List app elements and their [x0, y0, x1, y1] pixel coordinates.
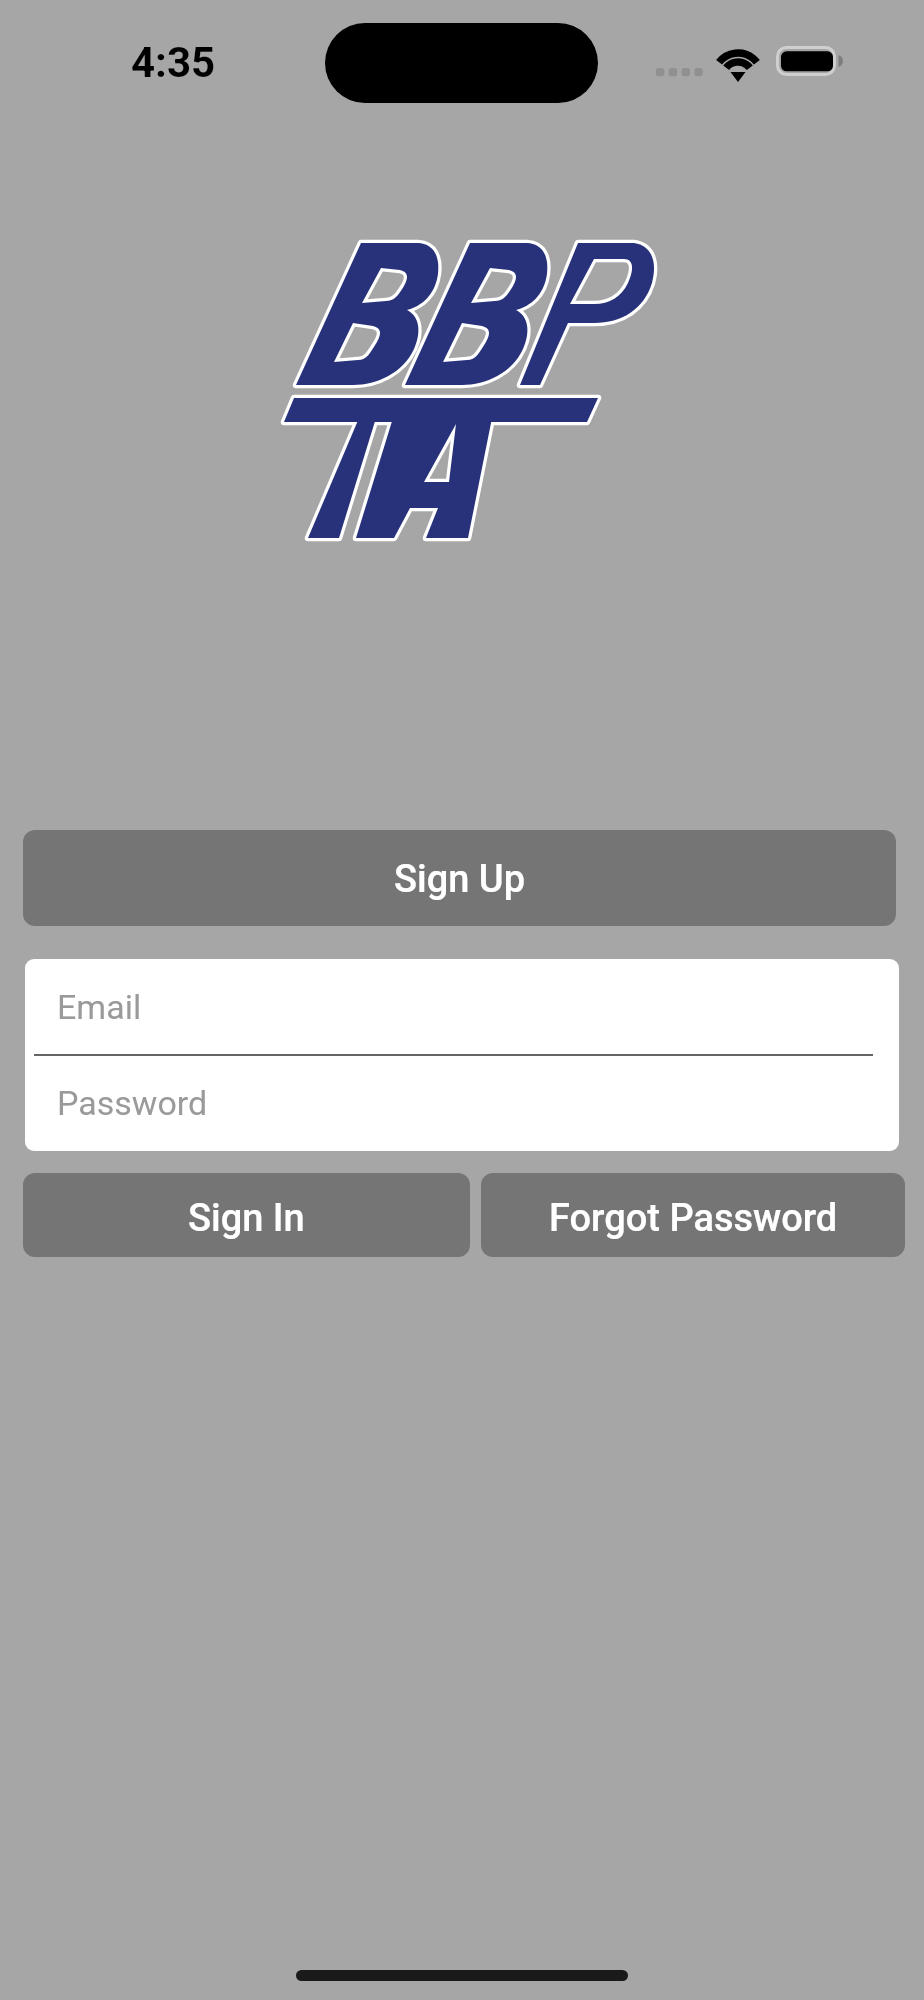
staticText: Email [57, 987, 142, 1027]
button[interactable]: Email [25, 959, 899, 1055]
button[interactable]: Sign Up [23, 830, 896, 926]
button[interactable]: Password [25, 1055, 899, 1151]
staticText: Forgot Password [549, 1196, 838, 1241]
other: Wi-Fi [716, 43, 762, 79]
staticText: Sign In [188, 1196, 305, 1241]
staticText: 4:35 [131, 38, 216, 87]
button[interactable]: Sign In [23, 1173, 470, 1257]
staticText: Sign Up [394, 857, 526, 902]
button[interactable]: Forgot Password [481, 1173, 905, 1257]
other: Battery [776, 46, 846, 78]
other: Cellular signal [656, 68, 704, 82]
staticText: Password [57, 1083, 208, 1123]
